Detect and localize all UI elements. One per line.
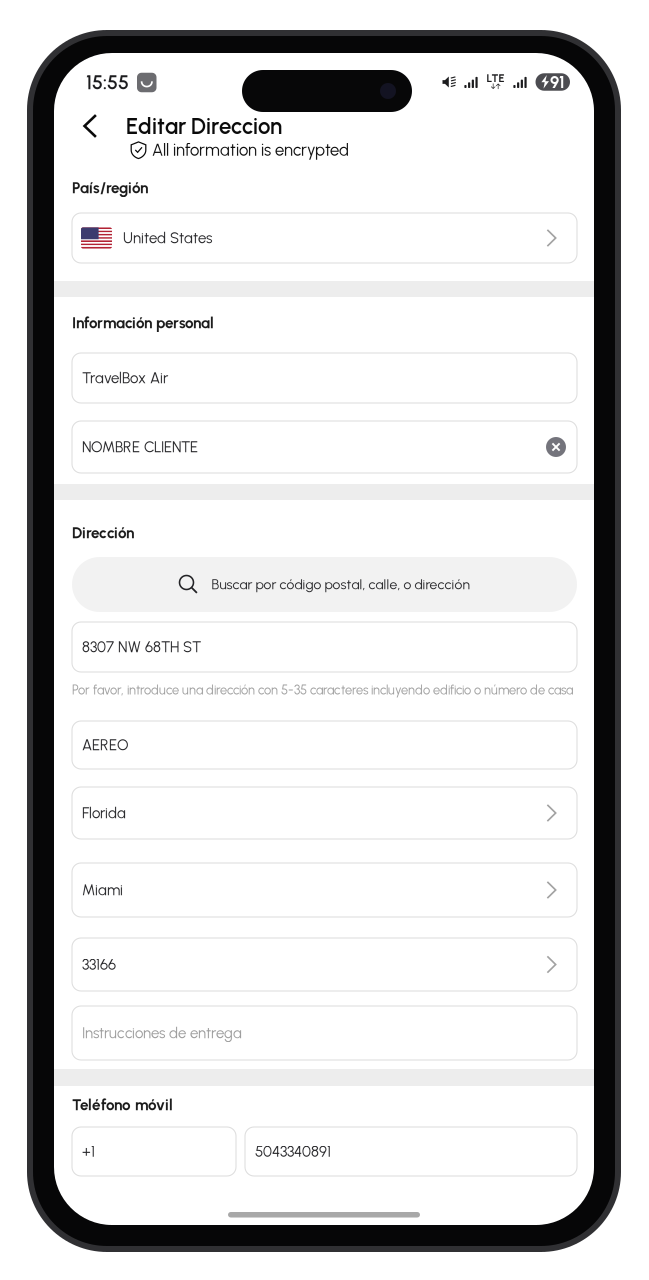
staticText: Teléfono móvil [72, 1096, 173, 1114]
staticText: LTE [486, 72, 504, 85]
staticText: 15:55 [86, 71, 129, 94]
staticText: Buscar por código postal, calle, o direc… [211, 576, 469, 593]
staticText: All information is encrypted [152, 140, 349, 160]
staticText: Dirección [72, 524, 134, 542]
staticText: 91 [550, 72, 565, 92]
button[interactable]: NOMBRE CLIENTE [72, 421, 577, 473]
staticText: País/región [72, 179, 148, 197]
staticText: AEREO [82, 736, 128, 754]
staticText: 5043340891 [255, 1142, 331, 1160]
button[interactable]: Buscar por código postal, calle, o direc… [72, 557, 577, 612]
staticText: 8307 NW 68TH ST [82, 638, 201, 656]
button[interactable]: United States [72, 213, 577, 263]
staticText: United States [123, 229, 212, 247]
staticText: NOMBRE CLIENTE [82, 438, 198, 456]
staticText: Miami [82, 881, 123, 899]
button[interactable]: +1 [72, 1127, 236, 1176]
button[interactable]: 8307 NW 68TH ST [72, 622, 577, 672]
button[interactable]: 5043340891 [245, 1127, 577, 1176]
button[interactable]: TravelBox Air [72, 353, 577, 403]
button[interactable]: Miami [72, 863, 577, 917]
staticText: Información personal [72, 314, 214, 332]
staticText: +1 [82, 1142, 95, 1160]
staticText: Instrucciones de entrega [82, 1024, 242, 1042]
staticText: Por favor, introduce una dirección con 5… [72, 682, 573, 698]
staticText: 33166 [82, 955, 116, 973]
button[interactable]: Florida [72, 787, 577, 839]
staticText: Editar Direccion [126, 113, 282, 140]
button[interactable]: AEREO [72, 721, 577, 769]
button[interactable]: Back [68, 104, 112, 148]
staticText: TravelBox Air [82, 369, 168, 387]
button[interactable]: 33166 [72, 938, 577, 991]
staticText: Florida [82, 804, 126, 822]
staticText: ↓↑ [490, 81, 500, 92]
button[interactable]: Instrucciones de entrega [72, 1006, 577, 1060]
